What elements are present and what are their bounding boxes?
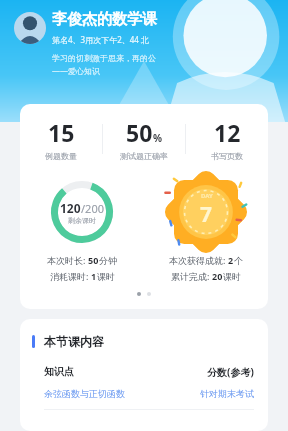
staticText: 剩余课时 — [68, 216, 96, 225]
staticText: ——爱心知识 — [52, 65, 100, 76]
staticText: 学习的切刺激于思来，再的公 — [52, 53, 156, 63]
staticText: 本节课内容 — [44, 334, 104, 349]
staticText: 50 — [126, 117, 153, 148]
staticText: 测试题正确率 — [120, 151, 168, 161]
staticText: 1 — [91, 270, 97, 282]
staticText: 50 — [88, 254, 99, 266]
staticText: 分钟 — [99, 255, 117, 266]
staticText: 消耗课时: — [50, 270, 91, 282]
button[interactable]: User avatar — [14, 12, 46, 44]
staticText: 本次时长: — [47, 254, 88, 266]
staticText: 例题数量 — [45, 151, 77, 161]
staticText: 12 — [214, 117, 241, 148]
staticText: 余弦函数与正切函数 — [44, 388, 125, 399]
staticText: 120 — [60, 200, 81, 216]
button[interactable]: 50 — [103, 117, 185, 161]
button[interactable]: 余弦函数与正切函数 — [44, 388, 254, 399]
staticText: 7 — [200, 200, 213, 229]
staticText: 本次获得成就: — [169, 254, 228, 266]
staticText: 李俊杰的数学课 — [52, 10, 157, 29]
staticText: 2 — [228, 254, 234, 266]
staticText: 课时 — [223, 271, 241, 282]
staticText: 书写页数 — [211, 151, 243, 161]
staticText: 针对期末考试 — [200, 388, 254, 399]
staticText: 知识点 — [44, 365, 74, 378]
staticText: 20 — [212, 270, 223, 282]
staticText: 课时 — [97, 271, 115, 282]
staticText: 个 — [234, 255, 243, 266]
button[interactable]: 12 — [186, 117, 268, 161]
staticText: DAY — [201, 192, 213, 200]
staticText: % — [153, 131, 163, 145]
staticText: 分数(参考) — [207, 365, 254, 379]
staticText: 第名4、3用次下午2、44 北 — [52, 34, 149, 45]
staticText: /200 — [81, 201, 104, 216]
button[interactable]: 15 — [20, 117, 102, 161]
staticText: 15 — [48, 117, 75, 148]
staticText: 累计完成: — [171, 270, 212, 282]
